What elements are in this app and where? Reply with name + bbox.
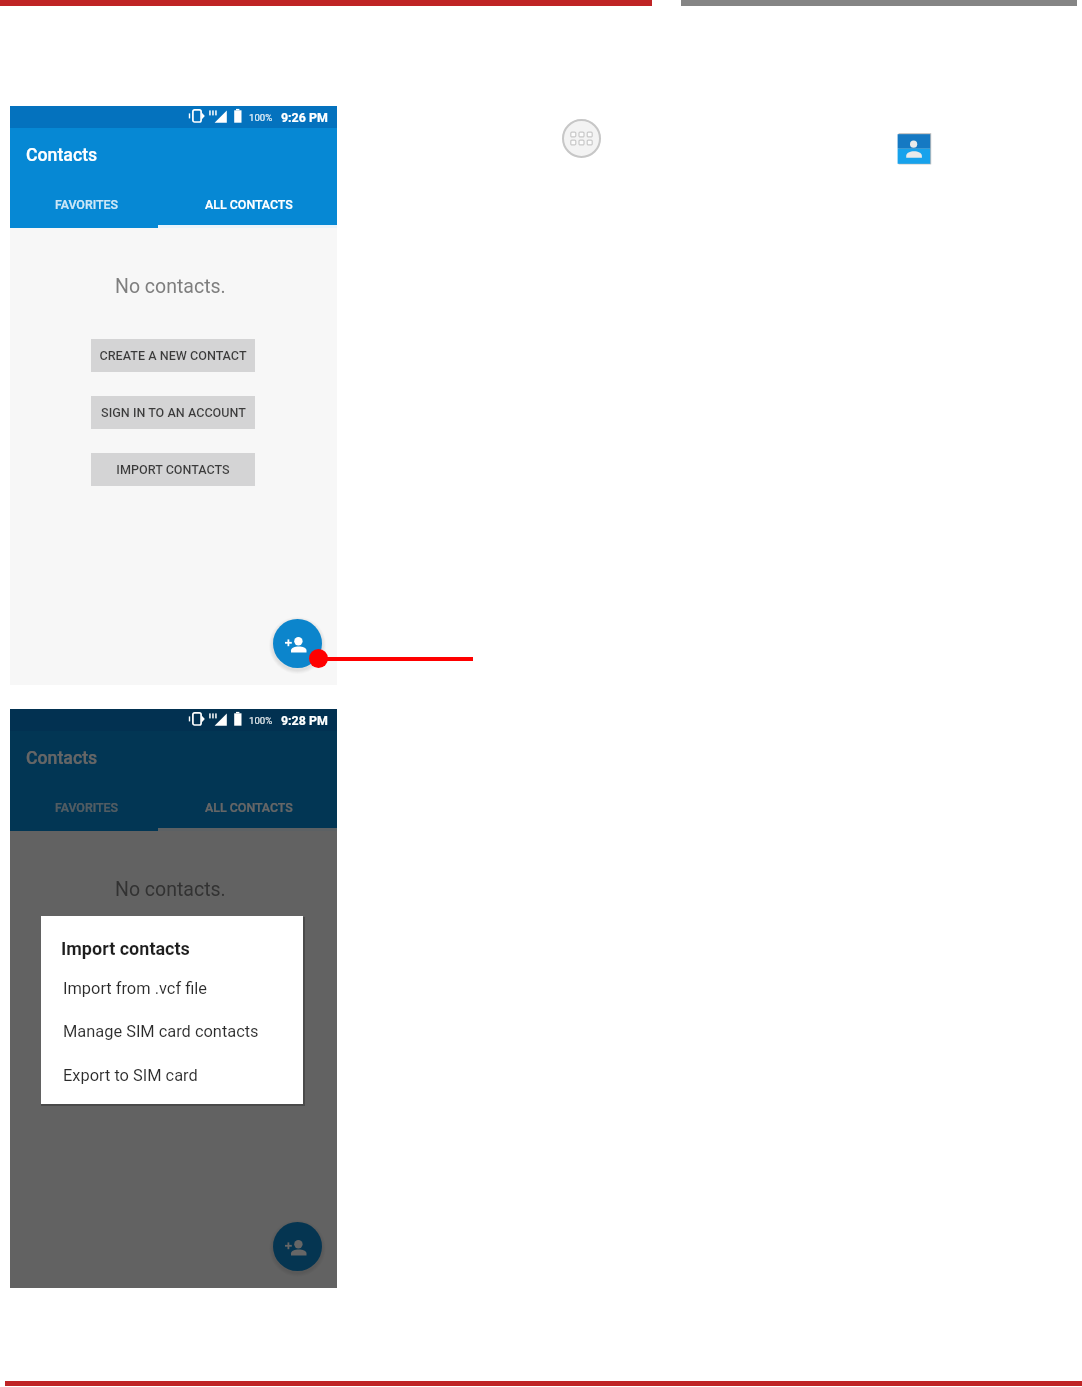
button[interactable]: Manage SIM card contacts xyxy=(41,1014,303,1048)
button[interactable]: Open app drawer xyxy=(559,116,604,161)
button[interactable]: FAVORITES xyxy=(10,794,173,820)
staticText: Import from .vcf file xyxy=(63,979,207,998)
button[interactable]: Import from .vcf file xyxy=(41,971,303,1005)
staticText: Import contacts xyxy=(61,938,190,959)
staticText: No contacts. xyxy=(115,878,226,901)
staticText: 100% xyxy=(249,112,273,123)
staticText: 100% xyxy=(249,715,273,726)
button[interactable]: Add contact xyxy=(273,619,322,668)
staticText: IMPORT CONTACTS xyxy=(116,462,230,477)
button[interactable]: IMPORT CONTACTS xyxy=(91,1056,255,1089)
staticText: IMPORT CONTACTS xyxy=(116,1065,230,1080)
button[interactable]: IMPORT CONTACTS xyxy=(91,453,255,486)
button[interactable]: SIGN IN TO AN ACCOUNT xyxy=(91,396,255,429)
button[interactable]: ALL CONTACTS xyxy=(173,794,337,820)
button[interactable]: CREATE A NEW CONTACT xyxy=(91,339,255,372)
button[interactable]: SIGN IN TO AN ACCOUNT xyxy=(91,999,255,1032)
button[interactable]: Contacts app xyxy=(896,132,933,169)
button[interactable]: ALL CONTACTS xyxy=(173,191,337,217)
staticText: ALL CONTACTS xyxy=(205,197,293,212)
staticText: FAVORITES xyxy=(55,197,119,212)
staticText: CREATE A NEW CONTACT xyxy=(99,348,247,363)
staticText: No contacts. xyxy=(115,275,226,298)
staticText: 9:28 PM xyxy=(281,713,328,728)
staticText: SIGN IN TO AN ACCOUNT xyxy=(101,405,246,420)
staticText: Contacts xyxy=(26,748,98,769)
staticText: CREATE A NEW CONTACT xyxy=(99,951,247,966)
button[interactable]: CREATE A NEW CONTACT xyxy=(91,942,255,975)
staticText: 9:26 PM xyxy=(281,110,328,125)
staticText: Export to SIM card xyxy=(63,1066,198,1085)
staticText: ALL CONTACTS xyxy=(205,800,293,815)
button[interactable]: Add contact xyxy=(273,1222,322,1271)
staticText: FAVORITES xyxy=(55,800,119,815)
button[interactable]: Export to SIM card xyxy=(41,1058,303,1092)
staticText: Contacts xyxy=(26,145,98,166)
staticText: Manage SIM card contacts xyxy=(63,1022,259,1041)
button[interactable]: FAVORITES xyxy=(10,191,173,217)
